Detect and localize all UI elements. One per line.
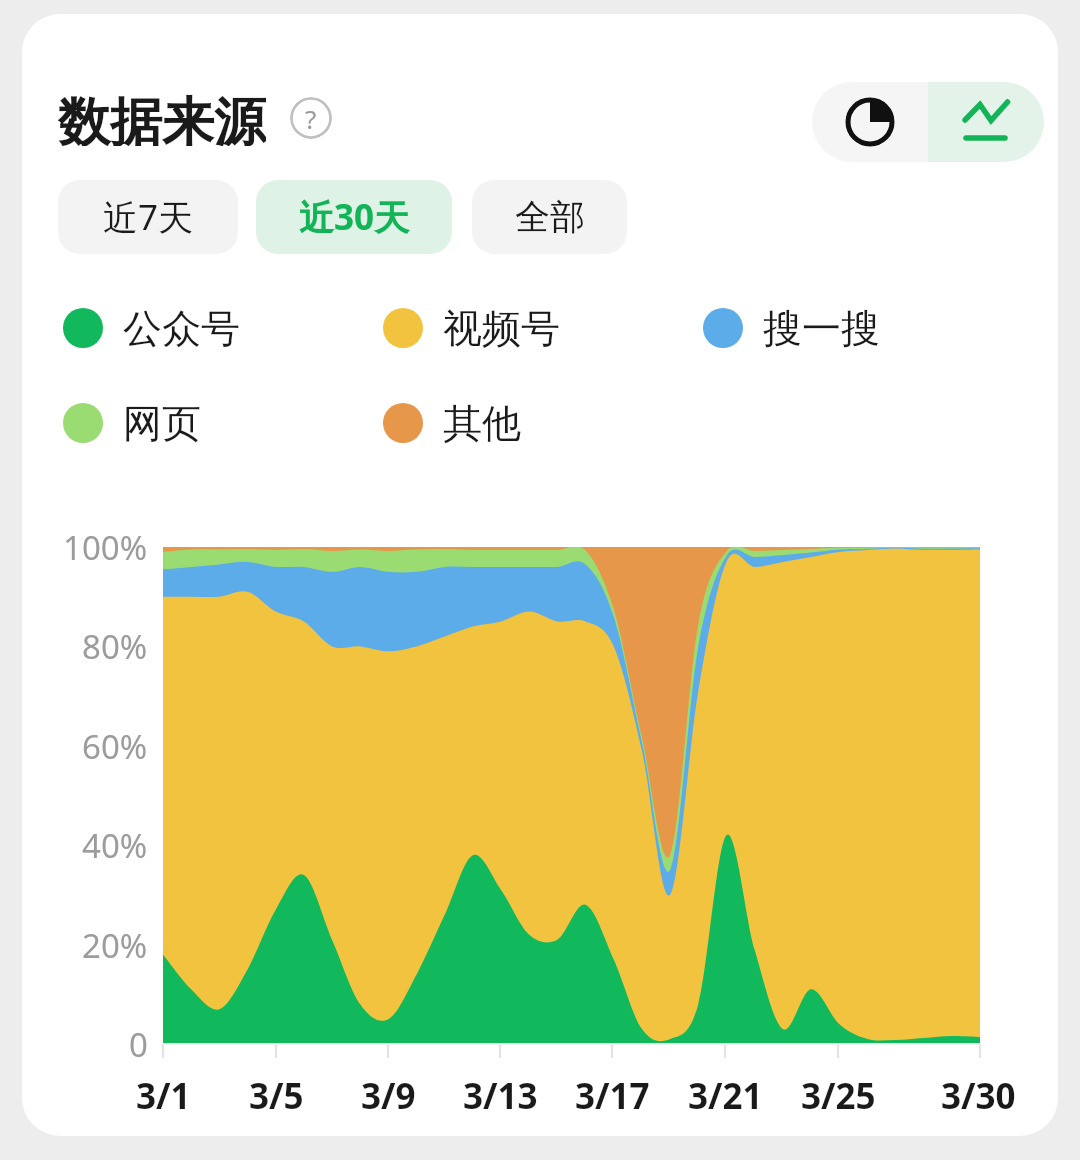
staticText: 20% [82, 923, 148, 968]
staticText: 3/17 [575, 1072, 650, 1120]
staticText: 网页 [123, 399, 201, 447]
staticText: 40% [82, 823, 148, 868]
staticText: 公众号 [123, 304, 240, 352]
staticText: 全部 [515, 195, 585, 239]
button[interactable]: 帮助说明 [290, 97, 332, 139]
staticText: 3/13 [463, 1072, 538, 1120]
staticText: 0 [129, 1022, 148, 1067]
staticText: 3/5 [249, 1072, 304, 1120]
button[interactable]: 全部 [472, 180, 627, 254]
button[interactable]: 数据来源 [58, 90, 332, 146]
button[interactable]: 其他 [382, 399, 702, 447]
staticText: 3/25 [801, 1072, 876, 1120]
staticText: 其他 [443, 399, 521, 447]
staticText: 80% [82, 624, 148, 669]
staticText: 3/9 [361, 1072, 416, 1120]
staticText: ? [305, 101, 317, 136]
staticText: 搜一搜 [763, 304, 880, 352]
staticText: 3/1 [136, 1072, 191, 1120]
button[interactable]: 近30天 [256, 180, 452, 254]
button[interactable]: 搜一搜 [702, 304, 962, 352]
staticText: 100% [63, 525, 148, 570]
staticText: 3/21 [688, 1072, 763, 1120]
staticText: 3/30 [941, 1072, 1016, 1120]
staticText: 近7天 [103, 193, 194, 241]
button[interactable]: 折线图视图 [928, 82, 1044, 162]
staticText: 60% [82, 724, 148, 769]
staticText: 视频号 [443, 304, 560, 352]
button[interactable]: 视频号 [382, 304, 702, 352]
staticText: 数据来源 [58, 90, 266, 146]
button[interactable]: 近7天 [58, 180, 238, 254]
button[interactable]: 网页 [62, 399, 382, 447]
button[interactable]: 公众号 [62, 304, 382, 352]
staticText: 近30天 [299, 193, 410, 241]
button[interactable]: 饼图视图 [812, 82, 928, 162]
